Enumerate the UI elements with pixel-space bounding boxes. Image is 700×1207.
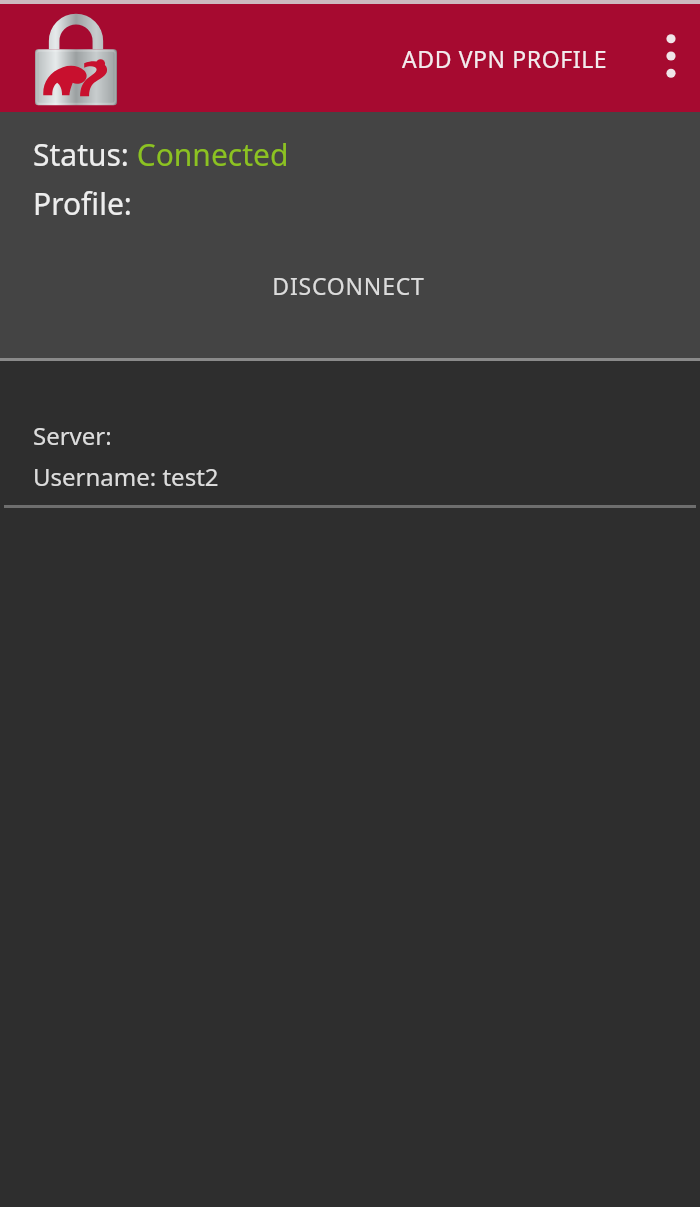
button[interactable]: DISCONNECT [0,254,700,316]
staticText: Server: [33,419,112,452]
button[interactable]: Server: [0,361,700,505]
staticText: Status: Connected [33,134,289,175]
staticText: ADD VPN PROFILE [402,43,608,74]
button[interactable]: ADD VPN PROFILE [394,31,616,86]
button[interactable]: More options [642,16,700,96]
staticText: Profile: [33,183,132,224]
staticText: DISCONNECT [272,270,425,301]
staticText: Username: test2 [33,460,219,493]
button[interactable]: App logo [30,6,122,110]
